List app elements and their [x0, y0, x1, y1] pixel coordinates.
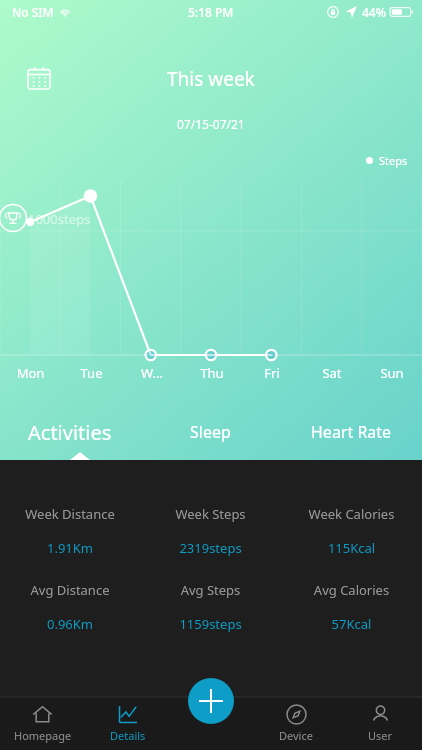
staticText: Avg Steps	[140, 581, 281, 599]
staticText: Steps	[379, 153, 408, 168]
staticText: Thu	[182, 364, 242, 382]
staticText: Activities	[28, 419, 112, 446]
staticText: Sun	[362, 364, 422, 382]
staticText: Mon	[0, 364, 61, 382]
staticText: Avg Distance	[0, 581, 140, 599]
staticText: Week Distance	[0, 505, 140, 523]
staticText: Fri	[242, 364, 302, 382]
staticText: Details	[110, 728, 146, 743]
staticText: Device	[279, 728, 313, 743]
staticText: Sleep	[190, 421, 231, 443]
staticText: Homepage	[14, 728, 72, 743]
staticText: User	[368, 728, 393, 743]
staticText: 0.96Km	[0, 615, 140, 633]
button[interactable]: Calendar	[26, 65, 52, 91]
staticText: 07/15-07/21	[177, 116, 245, 132]
staticText: This week	[167, 66, 255, 92]
staticText: 5:18 PM	[188, 4, 234, 20]
staticText: Sat	[302, 364, 362, 382]
staticText: 1.91Km	[0, 539, 140, 557]
button[interactable]: Device	[254, 697, 338, 750]
button[interactable]: Activities	[0, 410, 140, 454]
button[interactable]: Homepage	[0, 697, 85, 750]
staticText: 1000steps	[28, 210, 91, 228]
staticText: Week Calories	[281, 505, 422, 523]
staticText: 57Kcal	[281, 615, 422, 633]
staticText: Tue	[61, 364, 122, 382]
staticText: 44%	[362, 4, 386, 20]
staticText: 2319steps	[140, 539, 281, 557]
staticText: Heart Rate	[311, 421, 392, 443]
button[interactable]: Details	[85, 697, 170, 750]
staticText: W...	[122, 364, 182, 382]
staticText: 1159steps	[140, 615, 281, 633]
button[interactable]: Sleep	[140, 410, 281, 454]
button[interactable]: Add	[188, 678, 234, 724]
staticText: Week Steps	[140, 505, 281, 523]
staticText: No SIM	[12, 4, 54, 20]
staticText: Avg Calories	[281, 581, 422, 599]
staticText: 115Kcal	[281, 539, 422, 557]
button[interactable]: Heart Rate	[281, 410, 422, 454]
button[interactable]: User	[338, 697, 422, 750]
